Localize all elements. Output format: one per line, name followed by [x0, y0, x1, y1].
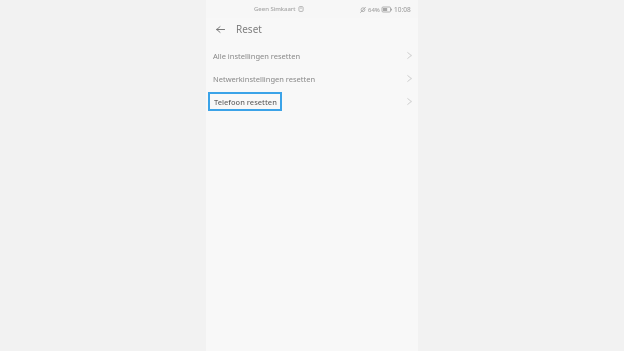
button[interactable]: Netwerkinstellingen resetten [206, 67, 418, 90]
button[interactable]: Alle instellingen resetten [206, 44, 418, 67]
staticText: 64% [368, 6, 380, 14]
staticText: Netwerkinstellingen resetten [213, 74, 316, 84]
button[interactable]: Back [210, 19, 230, 39]
staticText: Reset [236, 22, 262, 36]
staticText: Geen Simkaart [254, 5, 296, 13]
staticText: Telefoon resetten [214, 97, 277, 107]
staticText: Alle instellingen resetten [213, 51, 301, 61]
staticText: 10:08 [394, 5, 411, 14]
button[interactable]: Telefoon resetten [206, 90, 418, 113]
